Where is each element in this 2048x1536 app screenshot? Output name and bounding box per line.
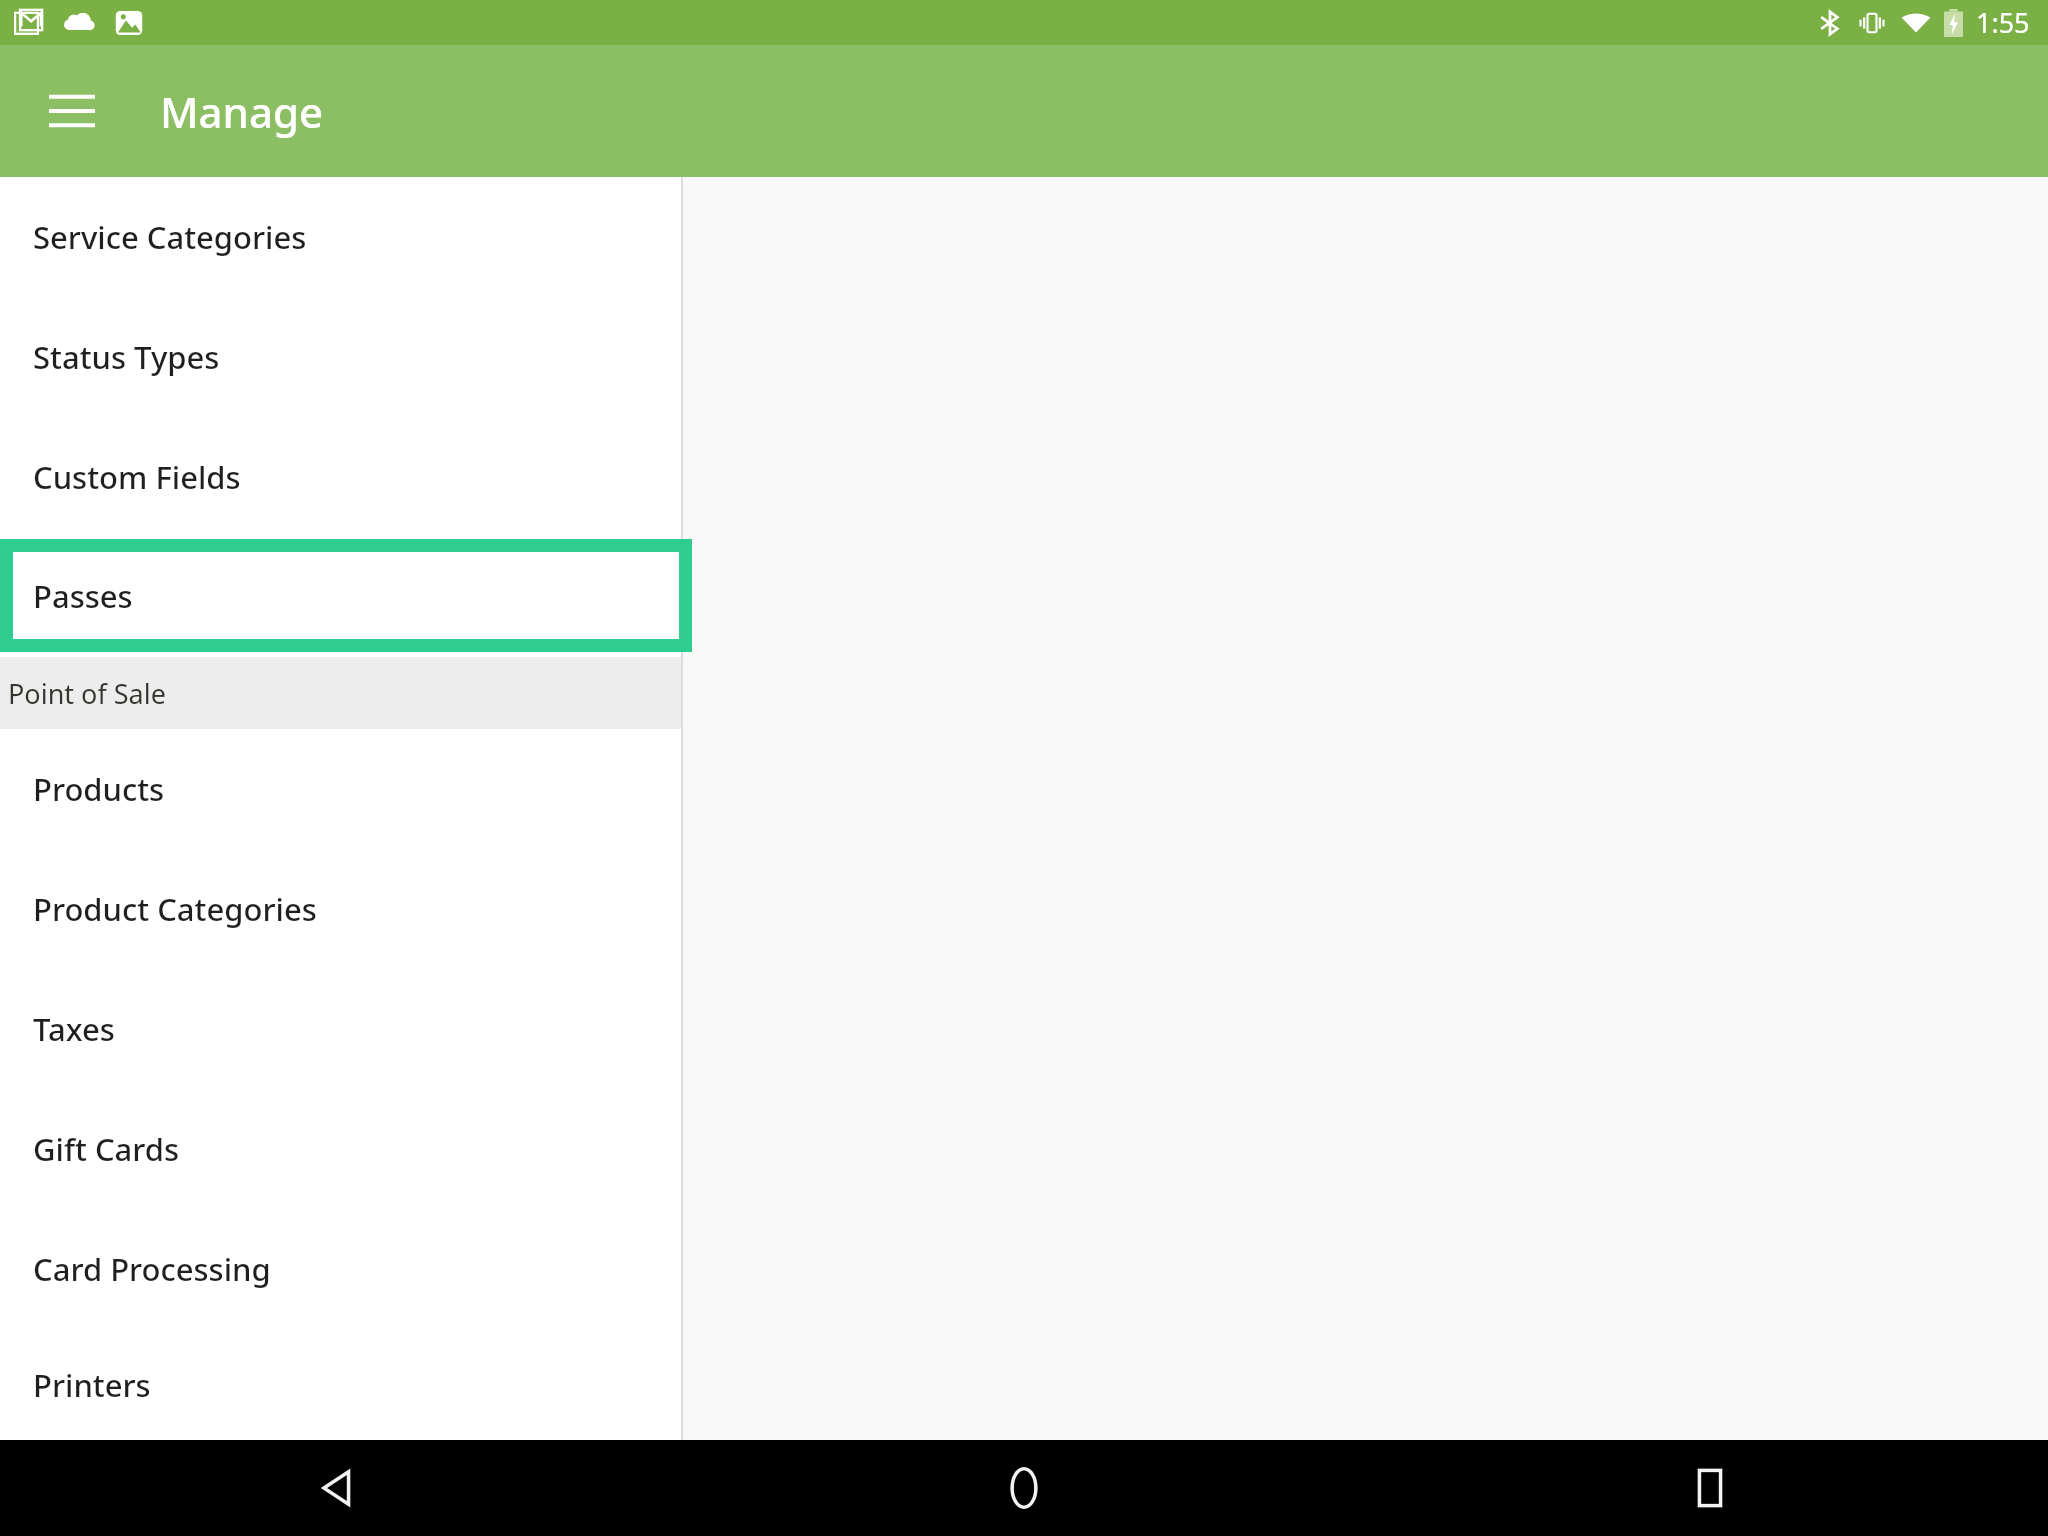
button[interactable]: Status Types [0, 297, 681, 417]
button[interactable]: Service Categories [0, 177, 681, 297]
button[interactable]: Home [976, 1440, 1072, 1536]
staticText: Products [33, 768, 165, 810]
button[interactable]: Card Processing [0, 1209, 681, 1329]
button[interactable]: Open navigation drawer [28, 67, 116, 155]
button[interactable]: Passes [13, 552, 679, 639]
button[interactable]: Printers [0, 1329, 681, 1440]
button[interactable]: Custom Fields [0, 417, 681, 537]
staticText: Card Processing [33, 1248, 271, 1290]
staticText: 1:55 [1976, 4, 2030, 41]
button[interactable]: Recent apps [1662, 1440, 1758, 1536]
button[interactable]: Back [290, 1440, 386, 1536]
staticText: Printers [33, 1364, 151, 1406]
button[interactable]: Taxes [0, 969, 681, 1089]
button[interactable]: Products [0, 729, 681, 849]
staticText: Custom Fields [33, 456, 241, 498]
staticText: Product Categories [33, 888, 317, 930]
staticText: Taxes [33, 1008, 115, 1050]
button[interactable]: Product Categories [0, 849, 681, 969]
staticText: Manage [160, 83, 324, 140]
staticText: Status Types [33, 336, 220, 378]
staticText: Service Categories [33, 216, 307, 258]
staticText: Point of Sale [8, 675, 166, 712]
button[interactable]: Gift Cards [0, 1089, 681, 1209]
staticText: Gift Cards [33, 1128, 180, 1170]
staticText: Passes [33, 575, 133, 617]
